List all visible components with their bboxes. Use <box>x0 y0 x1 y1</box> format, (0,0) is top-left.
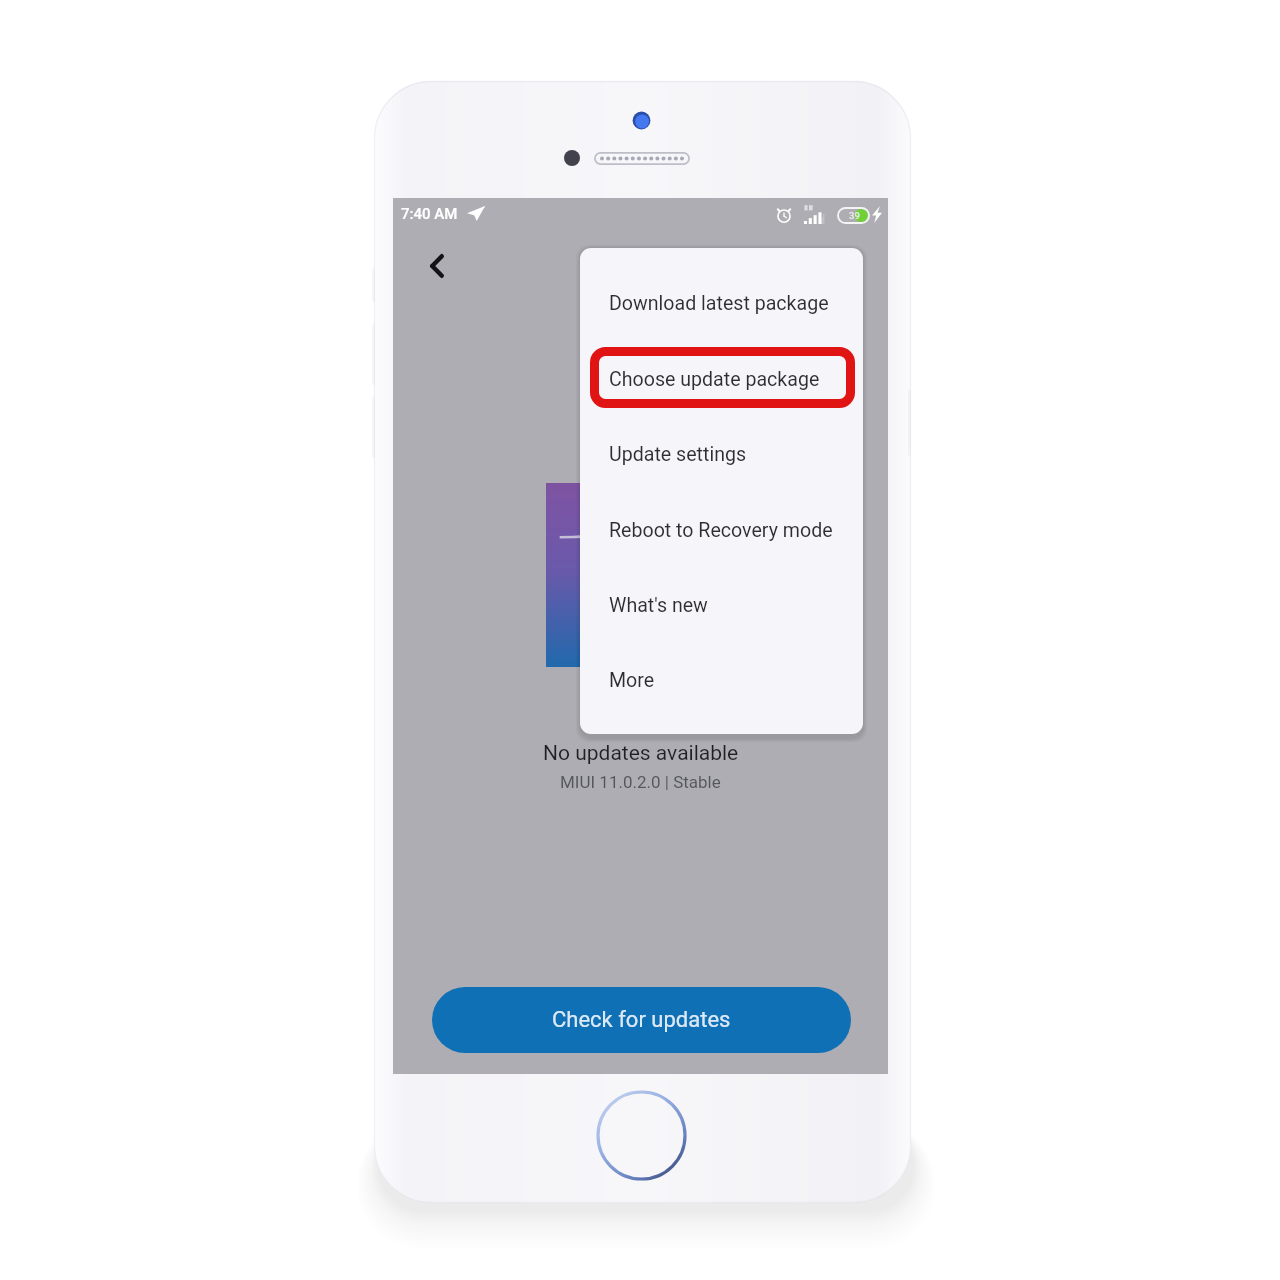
button[interactable]: Check for updates <box>432 987 851 1053</box>
staticText: 7:40 AM <box>401 205 458 223</box>
staticText: No updates available <box>543 741 739 766</box>
staticText: More <box>609 669 655 692</box>
button[interactable]: Update settings <box>580 428 863 480</box>
button[interactable]: Back <box>411 240 463 292</box>
staticText: Reboot to Recovery mode <box>609 519 833 542</box>
button[interactable]: Choose update package <box>580 353 863 405</box>
staticText: Check for updates <box>552 1007 731 1033</box>
staticText: Choose update package <box>609 368 820 391</box>
staticText: MIUI 11.0.2.0 | Stable <box>560 772 721 792</box>
staticText: What's new <box>609 594 708 617</box>
button[interactable]: What's new <box>580 579 863 631</box>
button[interactable]: More <box>580 654 863 706</box>
button[interactable]: Reboot to Recovery mode <box>580 504 863 556</box>
staticText: Download latest package <box>609 292 829 315</box>
button[interactable]: Download latest package <box>580 277 863 329</box>
staticText: Update settings <box>609 443 747 466</box>
staticText: 39 <box>849 210 860 221</box>
